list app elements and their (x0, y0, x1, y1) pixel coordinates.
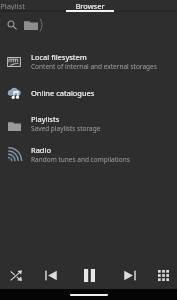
staticText: Playlists (31, 114, 60, 124)
button[interactable]: Playlists (0, 108, 177, 139)
button[interactable]: Online catalogues (0, 77, 177, 108)
button[interactable]: Browser (66, 0, 114, 11)
staticText: Local filesystem (31, 52, 87, 62)
staticText: Content of internal and external storage… (31, 62, 157, 71)
button[interactable]: Radio (0, 139, 177, 170)
staticText: Random tunes and compilations (31, 155, 130, 164)
button[interactable]: Local filesystem (0, 46, 177, 77)
staticText: Playlist (0, 1, 25, 11)
staticText: Browser (75, 1, 105, 11)
button[interactable]: Playlist (0, 0, 36, 11)
staticText: Online catalogues (31, 88, 95, 98)
staticText: Radio (31, 145, 51, 155)
button[interactable]: Previous (39, 263, 63, 287)
button[interactable]: Queue (151, 263, 175, 287)
button[interactable]: Search (3, 16, 21, 34)
button[interactable]: Shuffle (4, 263, 28, 287)
button[interactable]: Pause (77, 263, 101, 287)
button[interactable]: Next (118, 263, 142, 287)
button[interactable]: Root folder (24, 16, 44, 34)
staticText: Saved playlists storage (31, 124, 101, 133)
